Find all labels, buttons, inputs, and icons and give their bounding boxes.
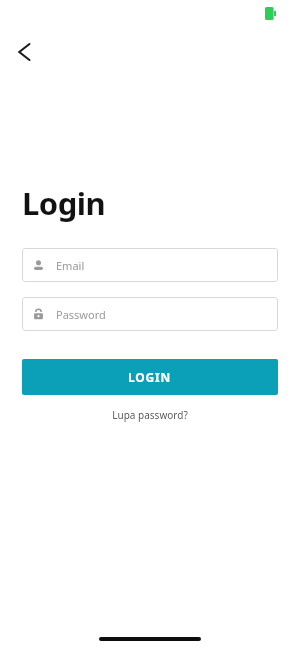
button[interactable]: Password	[22, 297, 278, 331]
button[interactable]: Email	[22, 248, 278, 282]
button[interactable]: Back	[8, 36, 40, 68]
button[interactable]: Lupa password?	[22, 408, 278, 422]
staticText: Password	[56, 307, 106, 322]
button[interactable]: LOGIN	[22, 359, 278, 395]
staticText: Lupa password?	[112, 408, 188, 422]
staticText: Email	[56, 258, 85, 273]
staticText: LOGIN	[128, 369, 172, 385]
staticText: Login	[22, 182, 106, 224]
